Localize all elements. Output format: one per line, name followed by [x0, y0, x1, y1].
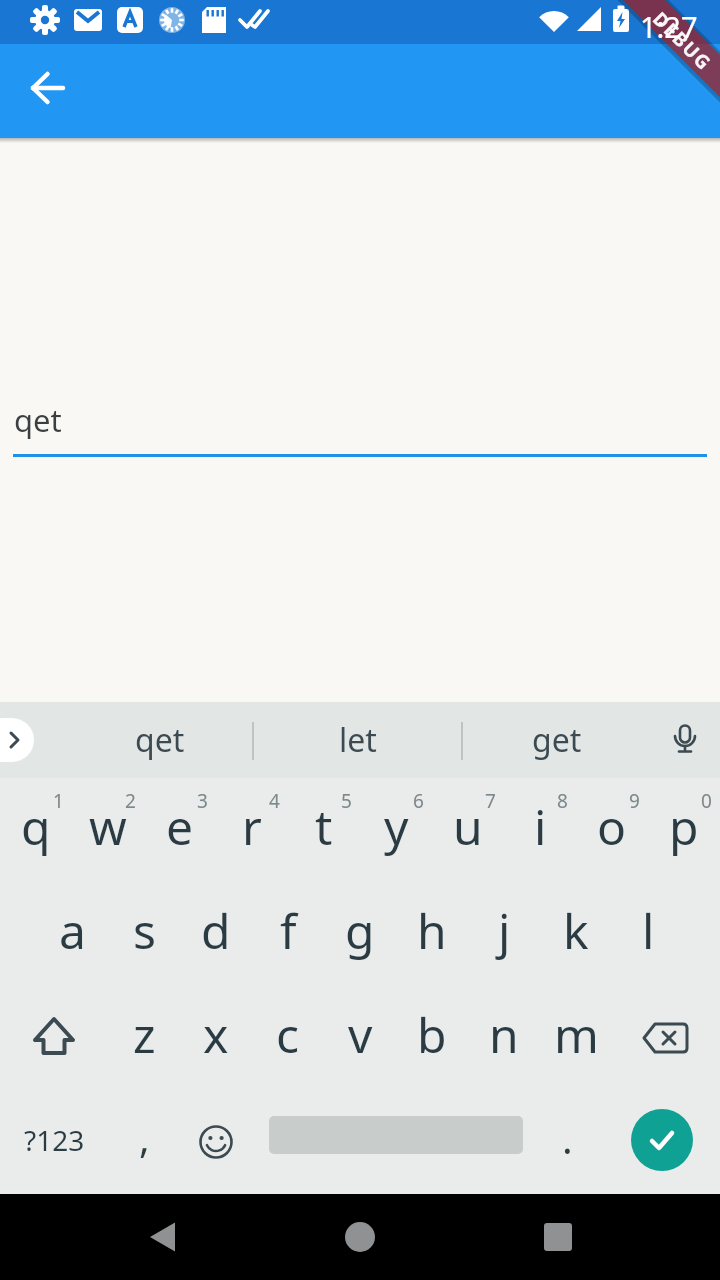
button[interactable]: [612, 986, 720, 1090]
button[interactable]: [22, 64, 76, 118]
button[interactable]: j: [468, 882, 540, 986]
staticText: g: [345, 898, 375, 963]
staticText: 1: [53, 788, 64, 814]
button[interactable]: .: [522, 1090, 612, 1194]
staticText: r: [242, 794, 262, 859]
button[interactable]: y: [360, 778, 432, 882]
staticText: y: [384, 794, 409, 859]
staticText: i: [534, 794, 547, 859]
button[interactable]: [0, 986, 108, 1090]
button[interactable]: o: [576, 778, 648, 882]
button[interactable]: get: [487, 702, 627, 778]
button[interactable]: w: [72, 778, 144, 882]
staticText: w: [89, 794, 127, 859]
button[interactable]: k: [540, 882, 612, 986]
staticText: 8: [557, 788, 568, 814]
staticText: u: [453, 794, 483, 859]
staticText: a: [59, 898, 86, 963]
staticText: j: [498, 898, 511, 963]
button[interactable]: [0, 1194, 240, 1280]
button[interactable]: [180, 1090, 252, 1194]
button[interactable]: [480, 1194, 720, 1280]
staticText: qet: [14, 399, 62, 441]
button[interactable]: b: [396, 986, 468, 1090]
button[interactable]: [663, 719, 707, 763]
button[interactable]: q: [0, 778, 72, 882]
button[interactable]: let: [288, 702, 428, 778]
staticText: ?123: [24, 1121, 85, 1159]
staticText: let: [339, 718, 377, 762]
staticText: 7: [485, 788, 496, 814]
button[interactable]: g: [324, 882, 396, 986]
button[interactable]: t: [288, 778, 360, 882]
button[interactable]: qet: [90, 702, 230, 778]
button[interactable]: v: [324, 986, 396, 1090]
button[interactable]: [252, 1090, 522, 1194]
button[interactable]: f: [252, 882, 324, 986]
button[interactable]: c: [252, 986, 324, 1090]
staticText: s: [133, 898, 156, 963]
staticText: o: [597, 794, 627, 859]
button[interactable]: a: [36, 882, 108, 986]
staticText: k: [563, 898, 589, 963]
staticText: l: [642, 898, 655, 963]
button[interactable]: h: [396, 882, 468, 986]
button[interactable]: i: [504, 778, 576, 882]
staticText: .: [562, 1111, 573, 1165]
button[interactable]: ,: [108, 1090, 180, 1194]
staticText: h: [417, 898, 447, 963]
staticText: 6: [413, 788, 424, 814]
staticText: d: [201, 898, 231, 963]
button[interactable]: x: [180, 986, 252, 1090]
button[interactable]: d: [180, 882, 252, 986]
button[interactable]: ?123: [0, 1090, 108, 1194]
staticText: 1:27: [640, 7, 698, 46]
staticText: b: [417, 1002, 447, 1067]
staticText: DEBUG: [647, 6, 717, 76]
button[interactable]: r: [216, 778, 288, 882]
staticText: 4: [269, 788, 280, 814]
staticText: q: [21, 794, 51, 859]
staticText: x: [203, 1002, 229, 1067]
button[interactable]: e: [144, 778, 216, 882]
button[interactable]: n: [468, 986, 540, 1090]
staticText: ,: [139, 1110, 150, 1164]
staticText: 2: [125, 788, 136, 814]
staticText: z: [133, 1002, 156, 1067]
staticText: p: [669, 794, 699, 859]
staticText: 0: [701, 788, 712, 814]
staticText: t: [315, 794, 333, 859]
button[interactable]: l: [612, 882, 684, 986]
button[interactable]: s: [108, 882, 180, 986]
staticText: qet: [135, 718, 185, 762]
button[interactable]: [0, 718, 34, 762]
staticText: 5: [341, 788, 352, 814]
staticText: f: [280, 898, 297, 963]
staticText: n: [489, 1002, 519, 1067]
button[interactable]: [612, 1090, 720, 1194]
button[interactable]: z: [108, 986, 180, 1090]
staticText: 3: [197, 788, 208, 814]
staticText: e: [166, 794, 194, 859]
button[interactable]: p: [648, 778, 720, 882]
staticText: v: [348, 1002, 373, 1067]
button[interactable]: qet: [0, 399, 720, 457]
button[interactable]: [240, 1194, 480, 1280]
button[interactable]: m: [540, 986, 612, 1090]
button[interactable]: u: [432, 778, 504, 882]
staticText: m: [554, 1002, 599, 1067]
staticText: get: [532, 718, 582, 762]
staticText: 9: [629, 788, 640, 814]
staticText: c: [276, 1002, 300, 1067]
